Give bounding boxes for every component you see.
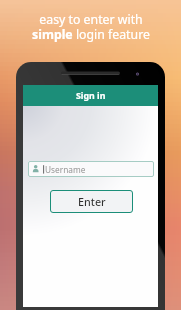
staticText: Enter xyxy=(78,194,106,209)
staticText: easy to enter with xyxy=(39,11,143,28)
button[interactable]: Sign in xyxy=(23,85,158,106)
button[interactable]: Enter xyxy=(50,190,133,213)
button[interactable]: Username xyxy=(28,161,154,177)
staticText: Sign in xyxy=(76,90,106,102)
staticText: simple login feature xyxy=(32,26,150,43)
staticText: Username xyxy=(45,164,86,175)
